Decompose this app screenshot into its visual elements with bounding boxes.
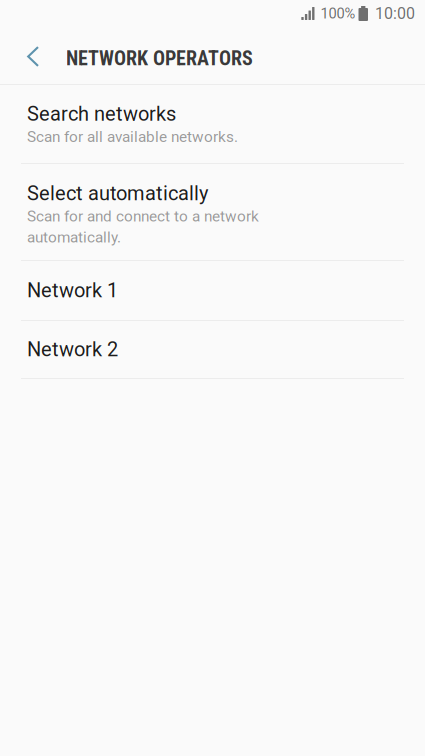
button[interactable]: Network 2 — [0, 321, 425, 378]
button[interactable]: Search networks — [0, 85, 425, 163]
staticText: Network 1 — [27, 279, 118, 302]
button[interactable]: Network 1 — [0, 261, 425, 320]
staticText: 100% — [320, 5, 355, 22]
staticText: 10:00 — [375, 4, 415, 23]
staticText: Search networks — [27, 102, 176, 126]
staticText: NETWORK OPERATORS — [66, 47, 253, 70]
staticText: Scan for all available networks. — [27, 128, 238, 146]
staticText: Select automatically — [27, 182, 208, 205]
staticText: Scan for and connect to a network automa… — [27, 207, 259, 246]
button[interactable]: Select automatically — [0, 164, 425, 260]
button[interactable]: Navigate up — [0, 30, 66, 87]
staticText: Network 2 — [27, 338, 118, 361]
